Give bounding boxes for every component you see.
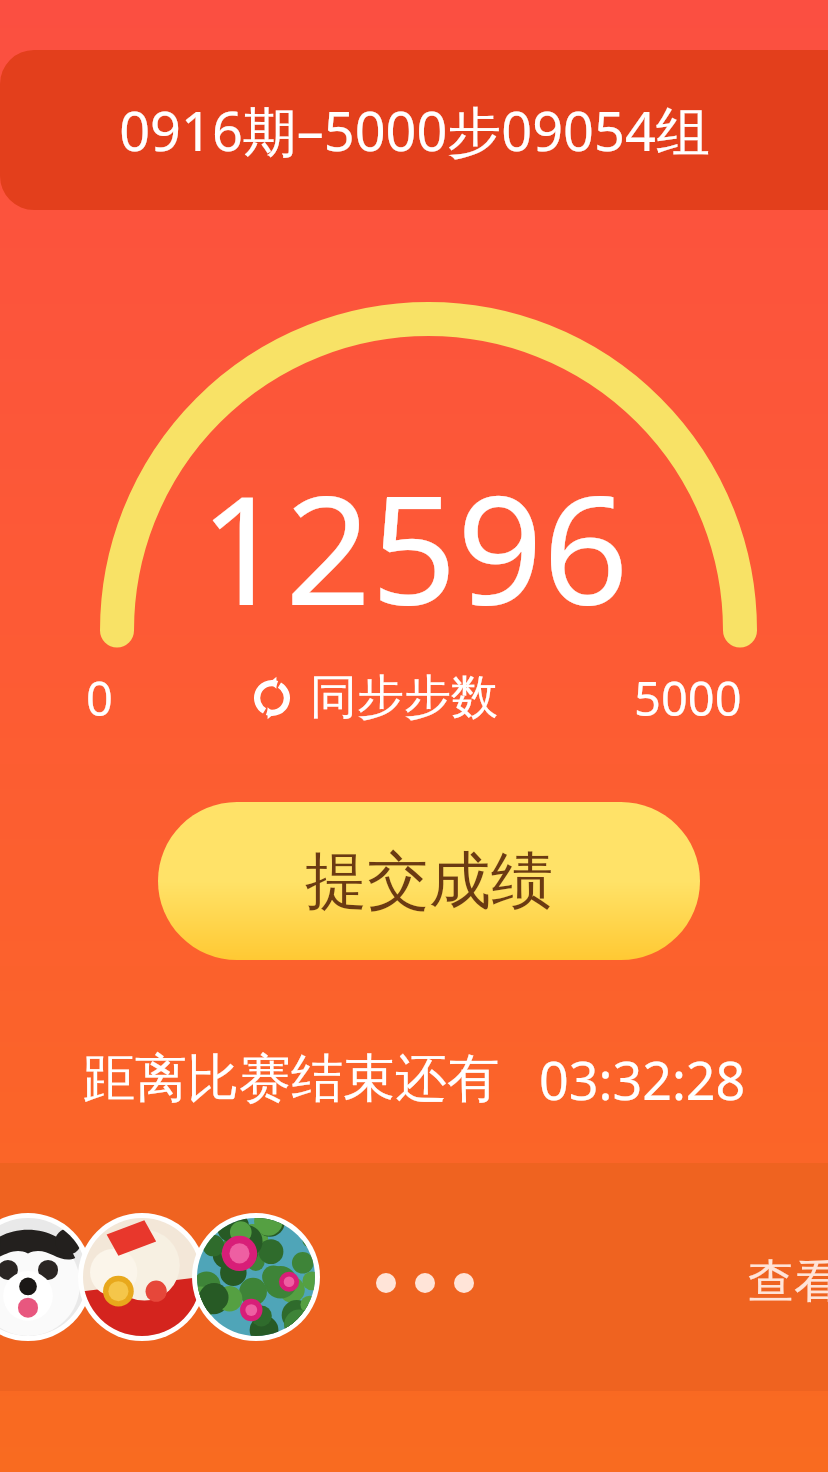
staticText: 同步步数 bbox=[310, 668, 498, 727]
staticText: 提交成绩 bbox=[305, 842, 553, 920]
staticText: 0 bbox=[86, 666, 113, 730]
staticText: 12596 bbox=[199, 445, 629, 649]
button[interactable]: 查看全部 bbox=[748, 1253, 828, 1311]
staticText: 距离比赛结束还有 bbox=[83, 1046, 499, 1112]
button[interactable]: Participant avatar bbox=[78, 1213, 206, 1341]
other: Sync steps bbox=[248, 674, 296, 722]
button[interactable]: Participant avatar bbox=[0, 1213, 92, 1341]
staticText: 0916期–5000步09054组 bbox=[119, 93, 710, 167]
button[interactable]: 0916期–5000步09054组 bbox=[0, 50, 828, 210]
button[interactable]: 提交成绩 bbox=[158, 802, 700, 960]
button[interactable]: Participant avatar bbox=[192, 1213, 320, 1341]
staticText: 5000 bbox=[634, 666, 742, 730]
button[interactable]: Sync steps bbox=[244, 666, 502, 729]
staticText: 03:32:28 bbox=[539, 1044, 746, 1115]
button[interactable]: More participants bbox=[370, 1267, 480, 1299]
